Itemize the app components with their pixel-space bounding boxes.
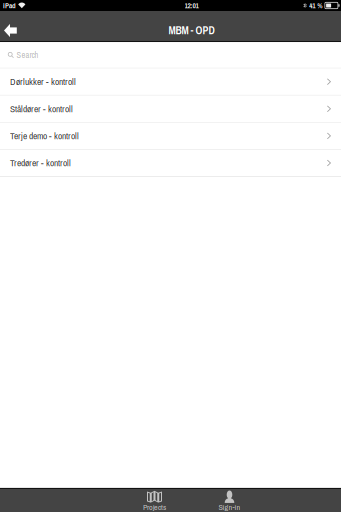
staticText: Projects <box>143 502 166 512</box>
staticText: Tredører - kontroll <box>10 157 71 169</box>
staticText: Search <box>17 49 39 61</box>
button[interactable]: Search <box>0 42 341 68</box>
staticText: 41 % <box>309 1 322 10</box>
button[interactable]: Sign-in <box>192 489 267 512</box>
staticText: 12:01 <box>184 1 198 10</box>
staticText: Ståldører - kontroll <box>10 102 73 115</box>
button[interactable]: Dørlukker - kontroll <box>0 68 341 96</box>
staticText: MBM - OPD <box>168 23 214 38</box>
staticText: Terje demo - kontroll <box>10 130 79 142</box>
button[interactable]: Tredører - kontroll <box>0 150 341 177</box>
staticText: Sign-in <box>218 502 240 512</box>
button[interactable]: Projects <box>117 489 192 512</box>
staticText: Dørlukker - kontroll <box>10 75 76 88</box>
button[interactable]: Back <box>0 15 32 45</box>
button[interactable]: Terje demo - kontroll <box>0 123 341 150</box>
staticText: iPad <box>3 1 16 10</box>
button[interactable]: Ståldører - kontroll <box>0 96 341 123</box>
